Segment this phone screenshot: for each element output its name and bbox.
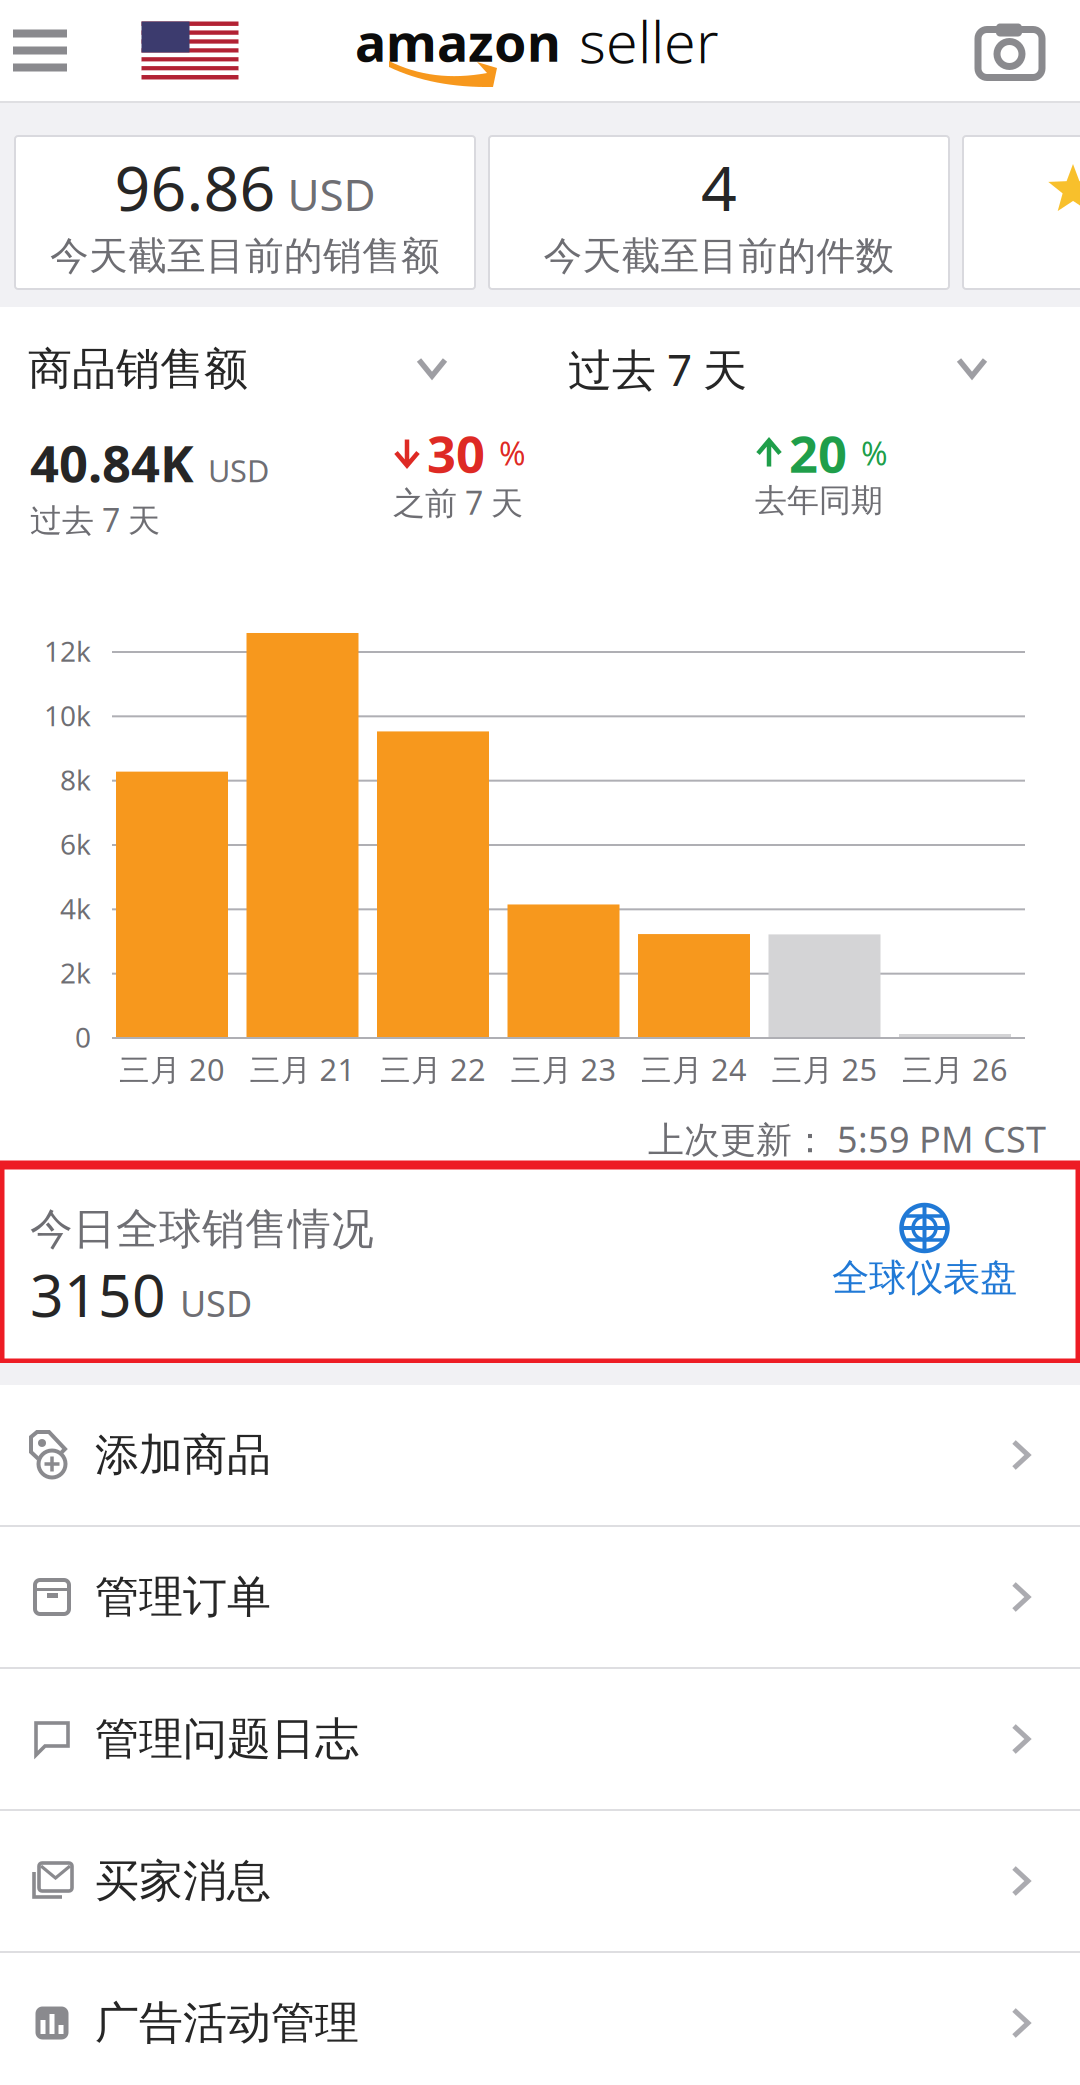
staticText: 管理订单 bbox=[95, 1570, 271, 1624]
staticText: 三月 24 bbox=[641, 1049, 747, 1089]
staticText: 4k bbox=[60, 890, 91, 927]
staticText: 三月 26 bbox=[902, 1049, 1008, 1089]
staticText: 三月 23 bbox=[510, 1049, 616, 1089]
staticText: USD bbox=[287, 165, 375, 223]
staticText: USD bbox=[208, 450, 269, 491]
staticText: 今日全球销售情况 bbox=[30, 1203, 374, 1255]
staticText: 去年同期 bbox=[755, 481, 883, 520]
staticText: 三月 22 bbox=[380, 1049, 486, 1089]
staticText: 40.84K bbox=[30, 429, 194, 496]
button[interactable]: 管理订单 bbox=[0, 1527, 1080, 1667]
staticText: 今天截至目前的销售额 bbox=[50, 232, 440, 280]
staticText: 0 bbox=[75, 1018, 91, 1056]
staticText: amazon bbox=[355, 7, 561, 76]
staticText: seller bbox=[579, 3, 719, 79]
staticText: 三月 20 bbox=[119, 1049, 225, 1089]
button[interactable]: 商品销售额 bbox=[28, 321, 488, 417]
button[interactable]: 广告活动管理 bbox=[0, 1953, 1080, 2085]
staticText: 过去 7 天 bbox=[568, 340, 747, 398]
staticText: 20 bbox=[789, 419, 847, 487]
staticText: 12k bbox=[44, 632, 91, 670]
button[interactable]: Menu bbox=[0, 0, 88, 101]
staticText: 过去 7 天 bbox=[30, 498, 160, 541]
staticText: 商品销售额 bbox=[28, 342, 248, 396]
staticText: 3150 bbox=[30, 1255, 166, 1333]
staticText: 买家消息 bbox=[95, 1854, 271, 1908]
staticText: 之前 7 天 bbox=[393, 481, 523, 523]
button[interactable]: 过去 7 天 bbox=[568, 321, 988, 417]
button[interactable]: Scan a product bbox=[955, 0, 1065, 101]
button[interactable]: 添加商品 bbox=[0, 1385, 1080, 1525]
staticText: 4 bbox=[701, 145, 737, 228]
staticText: 8k bbox=[60, 761, 91, 798]
staticText: 管理问题日志 bbox=[95, 1712, 359, 1766]
staticText: 今天截至目前的件数 bbox=[543, 232, 894, 280]
staticText: 2k bbox=[60, 954, 91, 991]
staticText: 三月 25 bbox=[771, 1049, 877, 1089]
staticText: 全球仪表盘 bbox=[832, 1255, 1017, 1301]
staticText: % bbox=[853, 432, 888, 474]
staticText: 广告活动管理 bbox=[95, 1996, 359, 2050]
staticText: 添加商品 bbox=[95, 1428, 271, 1482]
staticText: 上次更新： 5:59 PM CST bbox=[648, 1115, 1046, 1163]
button[interactable]: 买家消息 bbox=[0, 1811, 1080, 1951]
staticText: 96.86 bbox=[114, 145, 275, 228]
button[interactable]: Marketplace United States bbox=[125, 0, 255, 101]
staticText: 10k bbox=[44, 697, 91, 734]
staticText: 6k bbox=[60, 825, 91, 863]
button[interactable]: 管理问题日志 bbox=[0, 1669, 1080, 1809]
staticText: % bbox=[491, 432, 526, 474]
button[interactable]: 今日全球销售情况 bbox=[0, 1165, 1080, 1363]
staticText: 三月 21 bbox=[249, 1049, 355, 1089]
staticText: USD bbox=[180, 1279, 252, 1327]
staticText: 30 bbox=[427, 419, 485, 487]
